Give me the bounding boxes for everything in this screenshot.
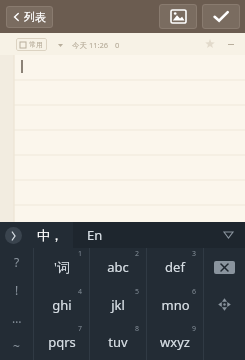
staticText: 7 xyxy=(78,324,83,334)
staticText: tuv xyxy=(108,333,128,351)
staticText: 5 xyxy=(135,287,140,297)
staticText: 8 xyxy=(135,324,140,334)
button[interactable]: 4 xyxy=(34,286,89,323)
staticText: ghi xyxy=(52,296,72,314)
button[interactable]: 9 xyxy=(147,323,203,360)
button[interactable]: 5 xyxy=(90,286,146,323)
staticText: 列表 xyxy=(24,10,46,24)
staticText: 1 xyxy=(78,249,83,259)
button[interactable]: More options xyxy=(225,38,237,50)
button[interactable]: Folder dropdown xyxy=(55,41,65,49)
staticText: ! xyxy=(15,282,19,298)
staticText: '词 xyxy=(54,258,70,276)
button[interactable]: Favourite xyxy=(203,37,217,51)
button[interactable]: Arrow keys xyxy=(204,286,245,323)
button[interactable]: Save note xyxy=(202,4,240,29)
button[interactable]: ~ xyxy=(0,332,33,360)
staticText: 3 xyxy=(192,249,197,259)
staticText: ~ xyxy=(13,338,20,354)
staticText: 9 xyxy=(192,324,197,334)
button[interactable]: En xyxy=(73,222,211,248)
staticText: abc xyxy=(107,258,129,276)
button[interactable]: 7 xyxy=(34,323,89,360)
button[interactable]: 3 xyxy=(147,248,203,286)
button[interactable]: ? xyxy=(0,248,33,276)
button[interactable]: Hide keyboard xyxy=(211,222,245,248)
button[interactable]: Expand toolbar xyxy=(0,222,26,248)
button[interactable]: 中， xyxy=(26,222,73,248)
button[interactable]: Backspace xyxy=(204,248,245,286)
staticText: 2 xyxy=(135,249,140,259)
staticText: pqrs xyxy=(48,333,76,351)
staticText: 今天 11:26 xyxy=(72,40,109,50)
staticText: wxyz xyxy=(160,333,190,351)
staticText: mno xyxy=(161,296,190,314)
staticText: ? xyxy=(14,254,20,270)
button[interactable]: 列表 xyxy=(6,6,53,28)
staticText: 中， xyxy=(37,227,63,243)
staticText: 4 xyxy=(78,287,83,297)
button[interactable]: ! xyxy=(0,276,33,304)
staticText: En xyxy=(87,226,103,244)
button[interactable]: 6 xyxy=(147,286,203,323)
staticText: 0 xyxy=(115,40,120,50)
staticText: 常用 xyxy=(29,40,43,49)
button[interactable]: 8 xyxy=(90,323,146,360)
button[interactable]: 2 xyxy=(90,248,146,286)
button[interactable]: Insert image xyxy=(159,4,197,29)
staticText: … xyxy=(12,310,22,326)
staticText: 6 xyxy=(192,287,197,297)
button[interactable]: 1 xyxy=(34,248,89,286)
staticText: jkl xyxy=(111,296,125,314)
staticText: def xyxy=(165,258,185,276)
button[interactable]: … xyxy=(0,304,33,332)
button[interactable]: 常用 xyxy=(16,38,47,51)
